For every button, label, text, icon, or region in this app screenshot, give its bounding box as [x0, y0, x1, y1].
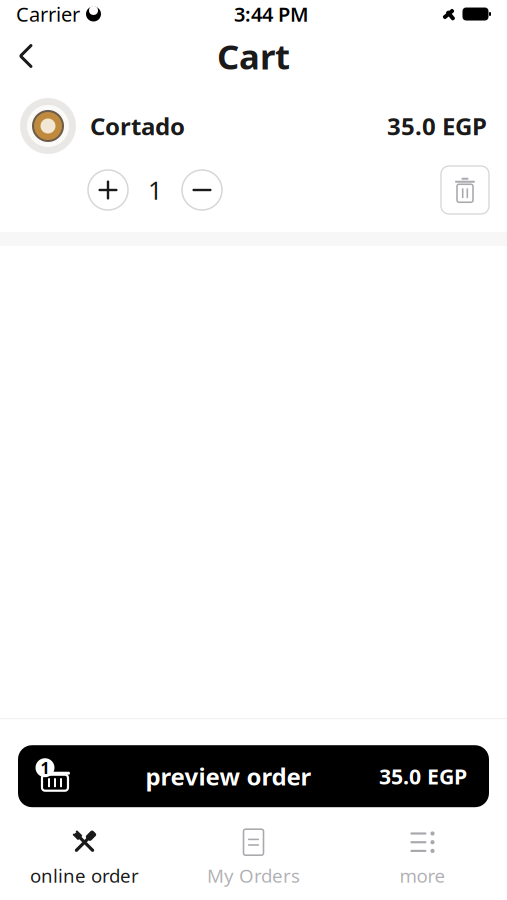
- staticText: 3:44 PM: [234, 1, 309, 27]
- button[interactable]: more: [338, 821, 507, 894]
- staticText: Cortado: [90, 110, 185, 142]
- staticText: Cart: [217, 33, 290, 79]
- button[interactable]: Remove item: [441, 166, 489, 214]
- staticText: 1: [148, 173, 162, 207]
- button[interactable]: My Orders: [169, 821, 338, 894]
- staticText: 1: [40, 757, 49, 778]
- staticText: My Orders: [207, 863, 300, 888]
- button[interactable]: 1: [18, 745, 489, 807]
- button[interactable]: Decrease quantity: [176, 164, 228, 216]
- button[interactable]: online order: [0, 821, 169, 894]
- button[interactable]: Increase quantity: [82, 164, 134, 216]
- staticText: 35.0 EGP: [387, 110, 487, 142]
- button[interactable]: Back: [4, 34, 48, 78]
- staticText: preview order: [145, 760, 311, 792]
- staticText: more: [399, 863, 445, 888]
- staticText: 35.0 EGP: [379, 762, 467, 790]
- staticText: online order: [30, 863, 139, 888]
- staticText: Carrier: [16, 1, 80, 27]
